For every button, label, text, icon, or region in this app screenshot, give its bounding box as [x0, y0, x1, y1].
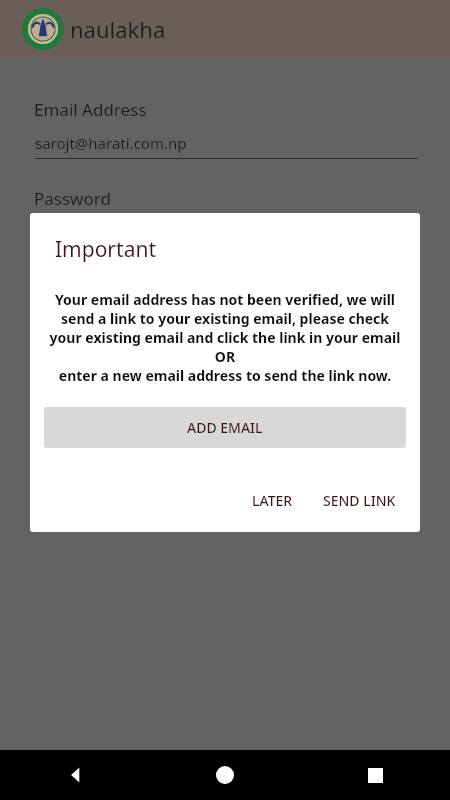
staticText: Important [55, 235, 156, 264]
button[interactable]: Recent apps [300, 750, 450, 800]
staticText: Your email address has not been verified… [40, 290, 410, 385]
button[interactable]: ADD EMAIL [44, 407, 406, 448]
staticText: naulakha [70, 14, 166, 44]
button[interactable]: LATER [244, 483, 301, 518]
button[interactable]: SEND LINK [315, 483, 404, 518]
staticText: LATER [252, 491, 293, 510]
button[interactable]: Home [150, 750, 300, 800]
button[interactable]: Back [0, 750, 150, 800]
staticText: SEND LINK [323, 491, 396, 510]
staticText: ADD EMAIL [187, 418, 263, 437]
staticText: sarojt@harati.com.np [35, 133, 187, 153]
staticText: Password [34, 187, 111, 210]
staticText: Email Address [34, 98, 147, 121]
